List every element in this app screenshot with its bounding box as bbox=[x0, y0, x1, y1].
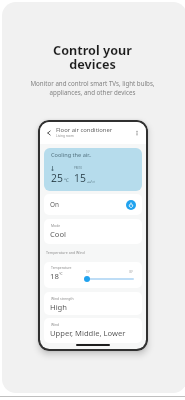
button[interactable]: Mode bbox=[44, 219, 142, 244]
staticText: Monitor and control smart TVs, light bul… bbox=[30, 79, 155, 97]
staticText: ㎍/㎥ bbox=[87, 179, 96, 184]
staticText: Control your devices bbox=[53, 42, 132, 73]
staticText: Cooling the air.. bbox=[51, 151, 92, 159]
staticText: Living room bbox=[56, 134, 74, 138]
button[interactable]: More options bbox=[133, 129, 141, 137]
staticText: Temperature bbox=[51, 265, 72, 270]
button[interactable]: Wind strength bbox=[44, 292, 142, 315]
button[interactable]: On bbox=[44, 194, 142, 215]
staticText: 25 bbox=[51, 171, 63, 185]
staticText: PM10 bbox=[74, 166, 82, 170]
staticText: Cool bbox=[50, 229, 66, 239]
button[interactable]: Cooling the air.. bbox=[44, 148, 142, 191]
staticText: Upper, Middle, Lower bbox=[50, 328, 126, 338]
button[interactable]: Wind bbox=[44, 318, 142, 343]
staticText: ℃ bbox=[59, 271, 63, 276]
staticText: 15 bbox=[74, 171, 86, 185]
staticText: 30° bbox=[129, 270, 134, 274]
button[interactable]: Back bbox=[45, 129, 53, 137]
staticText: Temperature and Wind bbox=[46, 250, 85, 255]
staticText: High bbox=[50, 302, 67, 312]
staticText: Wind strength bbox=[51, 296, 74, 301]
button[interactable]: Temperature bbox=[44, 262, 142, 288]
staticText: 16° bbox=[86, 270, 91, 274]
staticText: On bbox=[50, 200, 59, 209]
staticText: ℃ bbox=[64, 177, 69, 184]
staticText: Floor air conditioner bbox=[56, 126, 113, 134]
staticText: Mode bbox=[51, 223, 61, 228]
staticText: 18 bbox=[50, 271, 59, 282]
staticText: Wind bbox=[51, 322, 60, 327]
